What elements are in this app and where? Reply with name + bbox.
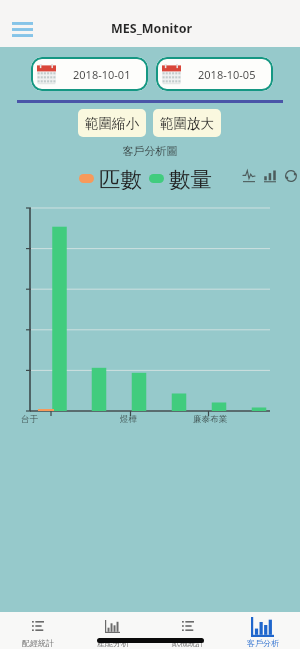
button[interactable]: Menu: [7, 17, 37, 42]
staticText: 範圍放大: [160, 115, 214, 132]
button[interactable]: 配經統計: [0, 612, 75, 649]
staticText: 台于: [21, 414, 39, 425]
button[interactable]: Bar chart: [260, 166, 280, 186]
staticText: 廉泰布業: [193, 414, 228, 425]
button[interactable]: 範圍放大: [153, 109, 221, 137]
staticText: 客戶分析圖: [0, 144, 300, 158]
staticText: 產能分析: [97, 638, 129, 648]
button[interactable]: Line chart: [239, 166, 259, 186]
staticText: 匹數: [99, 166, 142, 190]
staticText: 數量: [169, 166, 212, 190]
staticText: 客戶分析: [247, 638, 279, 648]
button[interactable]: 紙機統計: [150, 612, 225, 649]
staticText: 2018-10-05: [198, 67, 256, 82]
button[interactable]: 2018-10-01: [31, 57, 148, 91]
button[interactable]: 客戶分析: [225, 612, 300, 649]
staticText: MES_Monitor: [111, 20, 193, 37]
staticText: 煜樺: [120, 414, 138, 425]
button[interactable]: 範圍縮小: [78, 109, 146, 137]
button[interactable]: 2018-10-05: [156, 57, 273, 91]
staticText: 配經統計: [22, 638, 54, 648]
staticText: 紙機統計: [172, 638, 204, 648]
button[interactable]: 產能分析: [75, 612, 150, 649]
button[interactable]: Refresh: [281, 166, 300, 186]
staticText: 2018-10-01: [73, 67, 131, 82]
staticText: 範圍縮小: [85, 115, 139, 132]
